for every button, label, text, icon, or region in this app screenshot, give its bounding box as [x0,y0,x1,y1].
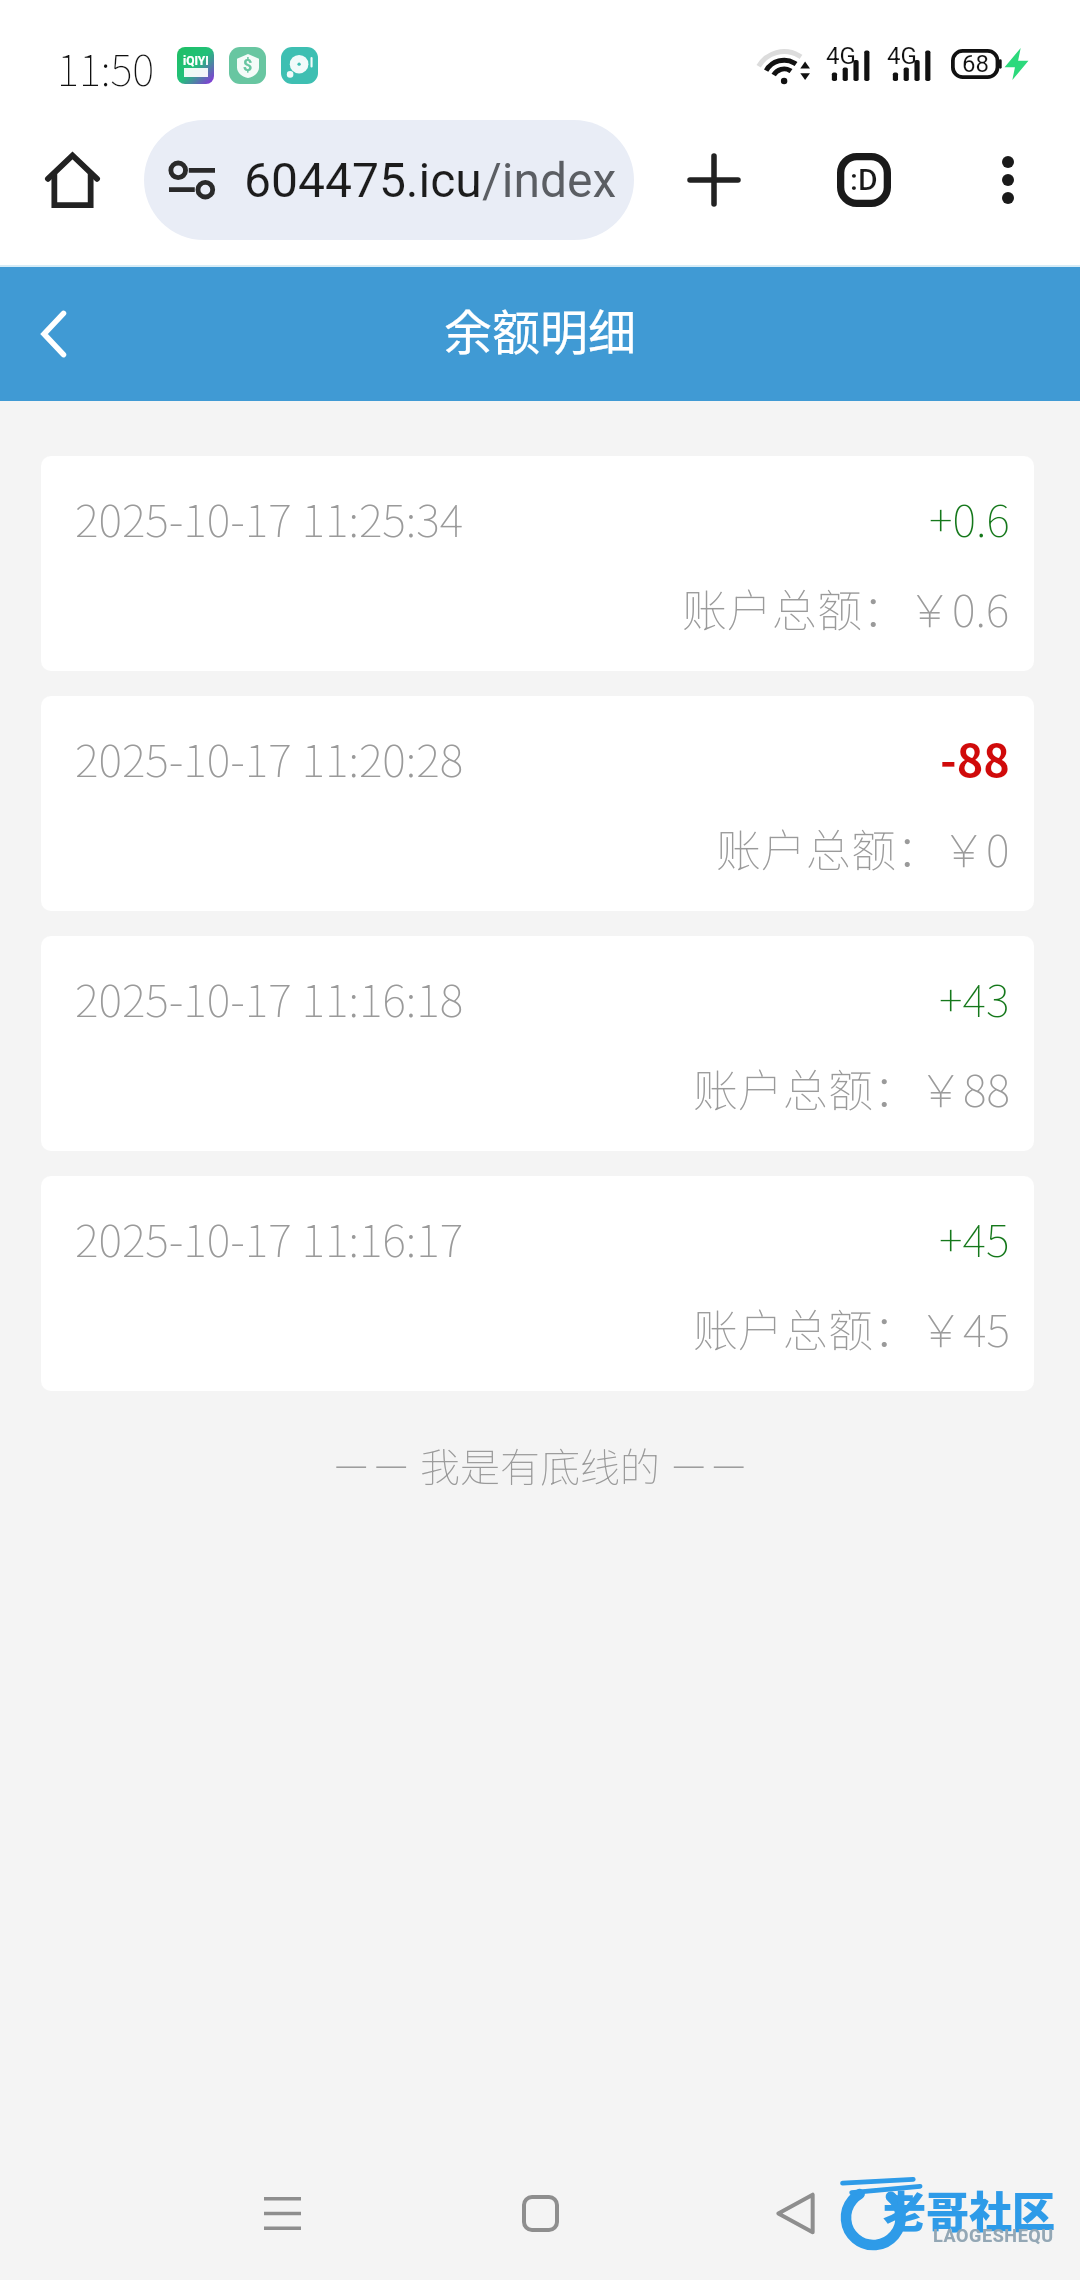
button[interactable]: 2025-10-17 11:16:18 [41,936,1034,1151]
staticText: +45 [939,1205,1010,1270]
staticText: $ [243,56,253,75]
staticText: /index [482,152,617,208]
staticText: 2025-10-17 11:16:18 [75,965,464,1030]
staticText: 账户总额：￥45 [693,1295,1010,1360]
staticText: 4G [887,42,917,70]
staticText: 2025-10-17 11:20:28 [75,725,464,790]
button[interactable]: More options [948,120,1068,240]
staticText: 账户总额：￥88 [693,1055,1010,1120]
staticText: 余额明细 [444,294,637,364]
button[interactable]: Back [735,2146,855,2280]
staticText: -88 [940,725,1010,790]
staticText: 604475.icu [244,152,482,208]
staticText: －－ 我是有底线的 －－ [0,1436,1080,1494]
staticText: 2025-10-17 11:16:17 [75,1205,464,1270]
button[interactable]: Home [10,120,134,240]
staticText: iQIYI [183,54,209,68]
button[interactable]: 2025-10-17 11:20:28 [41,696,1034,911]
button[interactable]: New tab [654,120,774,240]
staticText: 11:50 [57,37,155,98]
staticText: +43 [939,965,1010,1030]
staticText: 账户总额：￥0.6 [682,575,1010,640]
button[interactable]: 2025-10-17 11:25:34 [41,456,1034,671]
button[interactable]: Menu [222,2146,342,2280]
staticText: 2025-10-17 11:25:34 [75,485,464,550]
staticText: 4G [826,42,856,70]
button[interactable]: Home [480,2146,600,2280]
button[interactable]: Back [0,268,106,400]
staticText: 账户总额：￥0 [716,815,1010,880]
button[interactable]: Tabs [804,120,924,240]
staticText: :D [850,162,878,197]
staticText: LAOGESHEQU [933,2225,1054,2246]
button[interactable]: 2025-10-17 11:16:17 [41,1176,1034,1391]
staticText: +0.6 [929,485,1010,550]
button[interactable]: 604475.icu [144,120,634,240]
staticText: 68 [962,50,989,78]
staticText: 老哥社区 [883,2178,1055,2240]
